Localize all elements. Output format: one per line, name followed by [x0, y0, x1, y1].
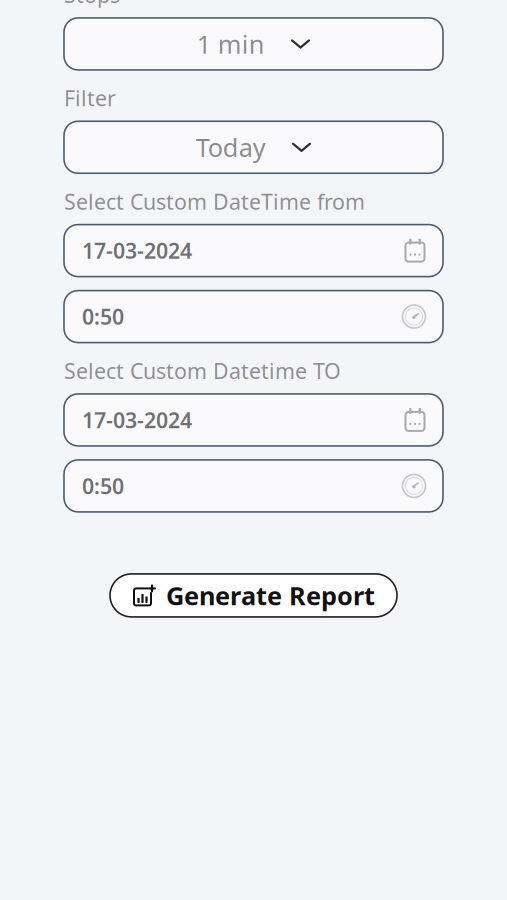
button[interactable]: Select time to [64, 460, 443, 512]
staticText: 17-03-2024 [82, 236, 192, 265]
button[interactable]: Select date from [64, 225, 443, 277]
staticText: Stops [64, 0, 120, 9]
button[interactable]: Select date to [64, 394, 443, 446]
staticText: Filter [64, 84, 116, 112]
staticText: 0:50 [82, 302, 124, 331]
button[interactable]: Generate Report [110, 574, 397, 617]
staticText: Select Custom Datetime TO [64, 357, 341, 385]
staticText: 17-03-2024 [82, 406, 192, 434]
button[interactable]: 1 min [64, 18, 443, 70]
staticText: Select Custom DateTime from [64, 187, 365, 215]
staticText: Generate Report [166, 579, 375, 612]
staticText: 0:50 [82, 472, 124, 500]
staticText: 1 min [197, 27, 265, 61]
staticText: Today [196, 130, 266, 164]
button[interactable]: Today [64, 121, 443, 173]
button[interactable]: Select time from [64, 291, 443, 343]
